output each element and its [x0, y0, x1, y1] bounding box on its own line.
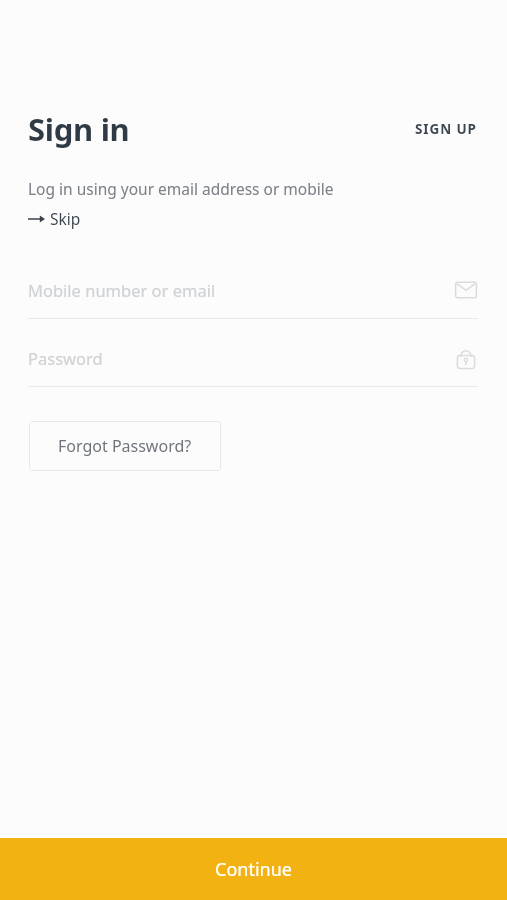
staticText: Password — [28, 347, 103, 369]
button[interactable]: Continue — [0, 838, 507, 900]
staticText: Log in using your email address or mobil… — [28, 178, 334, 199]
other: Email — [453, 277, 479, 303]
button[interactable]: Mobile number or email — [28, 277, 479, 303]
staticText: Sign in — [28, 108, 130, 150]
button[interactable]: Password — [28, 345, 479, 371]
button[interactable]: SIGN UP — [413, 115, 479, 143]
other: Password — [453, 345, 479, 371]
staticText: Skip — [50, 208, 81, 229]
staticText: Forgot Password? — [58, 435, 192, 457]
staticText: Continue — [215, 857, 292, 882]
staticText: SIGN UP — [415, 120, 477, 138]
button[interactable]: Skip — [28, 206, 87, 231]
staticText: Mobile number or email — [28, 279, 216, 301]
button[interactable]: Forgot Password? — [29, 421, 221, 471]
